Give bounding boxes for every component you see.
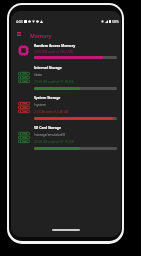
button[interactable]: Open navigation menu <box>12 27 26 41</box>
staticText: 3050 MB used of 3662 MB <box>34 50 73 54</box>
staticText: Internal Storage <box>34 65 62 70</box>
staticText: Memory <box>30 32 52 39</box>
staticText: 58% <box>112 19 119 24</box>
staticText: /storage/emulated/0 <box>34 133 66 137</box>
staticText: 2.3 GB used of 2.46 GB <box>34 110 69 114</box>
button[interactable]: System Storage <box>11 89 121 119</box>
staticText: Random Access Memory <box>34 43 76 48</box>
staticText: SD Card Storage <box>34 125 62 130</box>
button[interactable]: Random Access Memory <box>11 39 121 59</box>
staticText: 20.96 GB used of 51.95 GB <box>34 140 74 144</box>
button[interactable]: SD Card Storage <box>11 119 121 149</box>
staticText: /system <box>34 103 46 107</box>
staticText: /data <box>34 73 42 77</box>
button[interactable]: Internal Storage <box>11 59 121 89</box>
staticText: 4:03 <box>16 19 23 24</box>
staticText: 20.96 GB used of 51.95 GB <box>34 80 74 84</box>
staticText: System Storage <box>34 95 61 100</box>
